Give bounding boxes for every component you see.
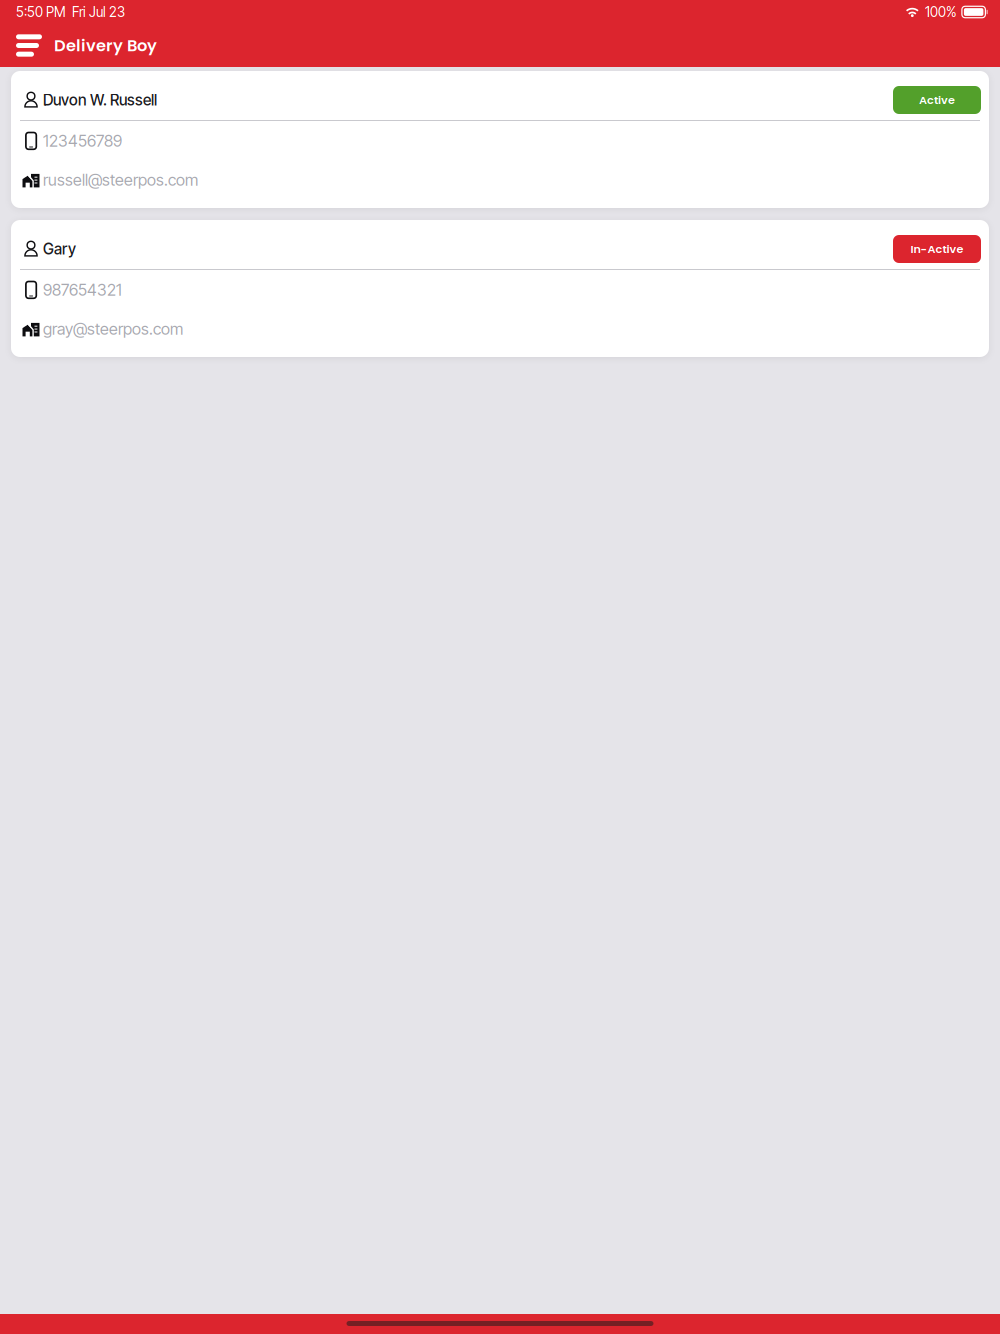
staticText: gray@steerpos.com [43,319,183,339]
staticText: 123456789 [43,131,122,151]
staticText: In-Active [910,241,963,257]
button[interactable]: Active [893,86,981,114]
staticText: Duvon W. Russell [43,91,157,109]
button[interactable]: In-Active [893,235,981,263]
staticText: Delivery Boy [54,34,157,57]
staticText: 5:50 PM [16,4,66,20]
staticText: 987654321 [43,280,122,300]
staticText: Fri Jul 23 [72,4,125,20]
staticText: Gary [43,240,76,258]
staticText: 100% [925,4,957,20]
staticText: Active [919,92,955,108]
staticText: russell@steerpos.com [43,170,198,190]
button[interactable]: Menu [0,24,54,67]
